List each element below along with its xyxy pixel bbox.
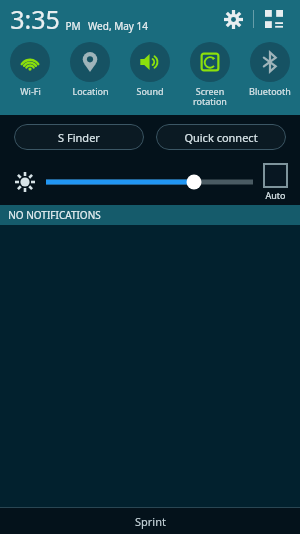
- staticText: Quick connect: [184, 130, 258, 145]
- staticText: Bluetooth: [249, 85, 291, 97]
- button[interactable]: Location: [60, 40, 120, 99]
- staticText: Location: [72, 85, 109, 97]
- button[interactable]: Auto: [261, 163, 290, 201]
- staticText: Sound: [136, 85, 164, 97]
- button[interactable]: Screen rotation: [180, 40, 240, 109]
- button[interactable]: Edit quick settings: [258, 3, 290, 35]
- button[interactable]: Sound: [120, 40, 180, 99]
- staticText: Auto: [265, 189, 286, 201]
- button[interactable]: [46, 167, 253, 197]
- staticText: Wi-Fi: [20, 85, 41, 97]
- button[interactable]: S Finder: [14, 124, 144, 150]
- staticText: NO NOTIFICATIONS: [8, 208, 101, 222]
- button[interactable]: Quick connect: [156, 124, 286, 150]
- button[interactable]: Settings: [217, 3, 249, 35]
- button[interactable]: Brightness: [10, 167, 40, 197]
- staticText: 3:35: [10, 2, 60, 36]
- staticText: PM: [65, 19, 81, 33]
- button[interactable]: Wi-Fi: [0, 40, 60, 99]
- staticText: Wed, May 14: [88, 19, 148, 33]
- staticText: Sprint: [135, 514, 166, 529]
- button[interactable]: Bluetooth: [240, 40, 300, 99]
- staticText: S Finder: [58, 130, 100, 145]
- staticText: Screen rotation: [193, 85, 227, 107]
